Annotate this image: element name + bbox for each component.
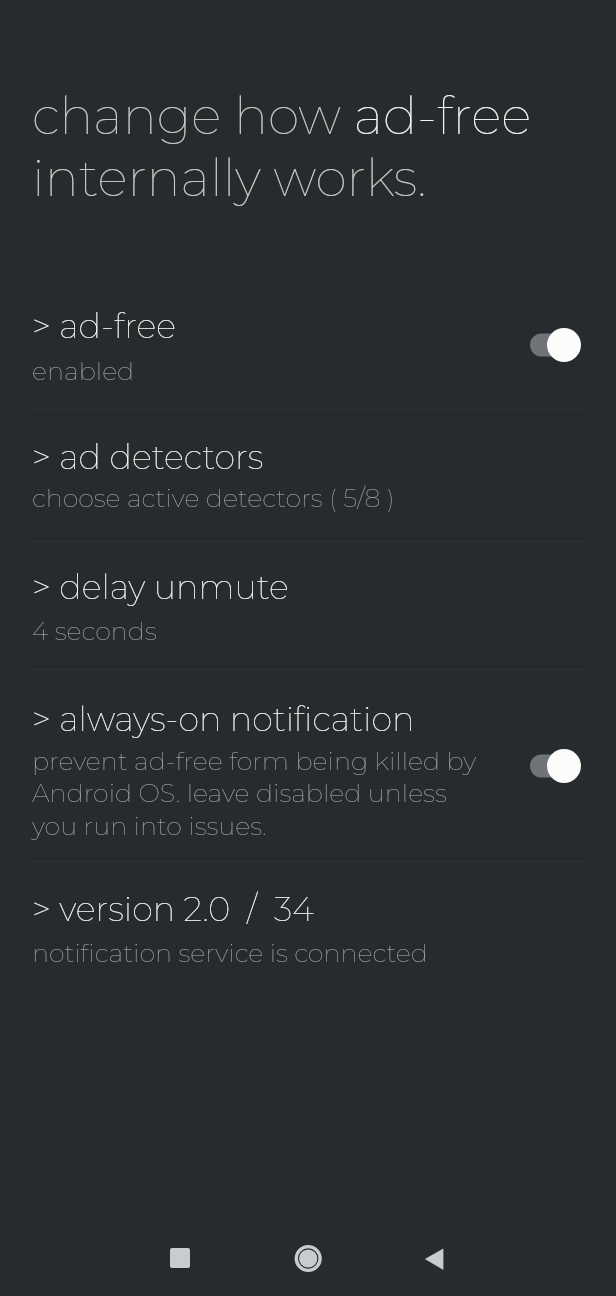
button[interactable]: Recents bbox=[152, 1230, 208, 1286]
button[interactable] bbox=[0, 410, 616, 541]
staticText: > ad-free bbox=[32, 305, 177, 346]
button[interactable]: Toggle enabled bbox=[516, 738, 592, 794]
staticText: > always-on notification bbox=[32, 698, 415, 739]
staticText: change how ad-free internally works. bbox=[32, 85, 572, 209]
button[interactable] bbox=[0, 670, 616, 861]
staticText: > version 2.0 / 34 bbox=[32, 888, 314, 929]
button[interactable]: Toggle enabled bbox=[516, 317, 592, 373]
button[interactable]: Home bbox=[280, 1230, 336, 1286]
button[interactable] bbox=[0, 542, 616, 669]
staticText: notification service is connected bbox=[32, 937, 428, 968]
staticText: enabled bbox=[32, 355, 135, 386]
staticText: choose active detectors ( 5/8 ) bbox=[32, 482, 395, 513]
button[interactable]: Back bbox=[400, 1230, 456, 1286]
button[interactable] bbox=[0, 862, 616, 1000]
staticText: > ad detectors bbox=[32, 436, 264, 477]
staticText: > delay unmute bbox=[32, 566, 289, 607]
button[interactable] bbox=[0, 290, 616, 409]
staticText: 4 seconds bbox=[32, 615, 157, 646]
staticText: prevent ad-free form being killed by And… bbox=[32, 745, 492, 841]
